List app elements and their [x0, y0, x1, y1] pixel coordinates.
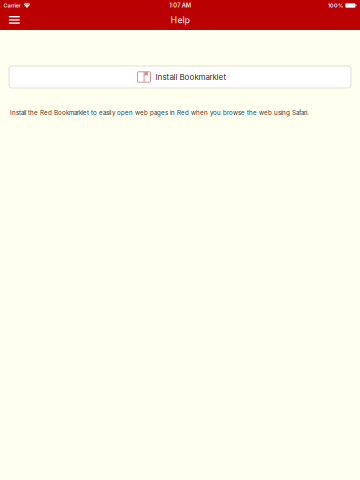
staticText: Carrier: [3, 2, 20, 9]
staticText: AM: [182, 2, 191, 9]
staticText: Install the Red Bookmarklet to easily op…: [10, 109, 309, 116]
staticText: 1:07: [169, 2, 180, 9]
staticText: Help: [170, 15, 189, 25]
staticText: Install Bookmarklet: [155, 72, 226, 82]
button[interactable]: Menu: [0, 11, 29, 30]
staticText: 100%: [328, 2, 343, 9]
button[interactable]: Install Bookmarklet: [9, 66, 351, 88]
